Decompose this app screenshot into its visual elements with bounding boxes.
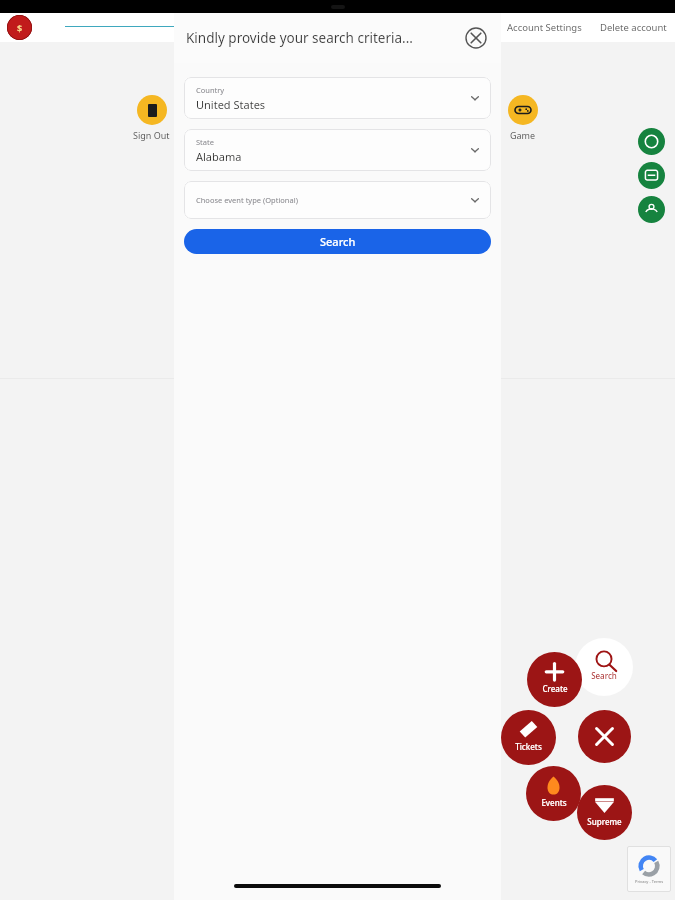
staticText: State: [196, 137, 214, 147]
button[interactable]: Events: [526, 766, 581, 821]
button[interactable]: Search: [575, 638, 633, 696]
staticText: Create: [542, 683, 568, 694]
staticText: Choose event type (Optional): [196, 195, 298, 205]
staticText: Alabama: [196, 149, 242, 164]
button[interactable]: Delete account: [600, 21, 667, 34]
button[interactable]: Home logo: [7, 15, 32, 40]
button[interactable]: Country: [184, 77, 491, 119]
button[interactable]: reCAPTCHA: [627, 846, 671, 892]
staticText: Sign Out: [133, 129, 170, 141]
button[interactable]: Tickets: [501, 710, 556, 765]
button[interactable]: Messages: [638, 162, 665, 189]
staticText: Country: [196, 85, 225, 95]
button[interactable]: Choose event type (Optional): [184, 181, 491, 219]
staticText: Game: [510, 129, 536, 141]
button[interactable]: State: [184, 129, 491, 171]
button[interactable]: Close: [463, 25, 489, 51]
button[interactable]: Create: [527, 652, 582, 707]
staticText: Search: [591, 670, 617, 681]
button[interactable]: Supreme: [577, 785, 632, 840]
button[interactable]: Account Settings: [507, 21, 582, 34]
button[interactable]: Sign Out: [133, 95, 170, 141]
button[interactable]: Contact: [638, 196, 665, 223]
staticText: $: [17, 22, 23, 34]
staticText: Kindly provide your search criteria...: [186, 29, 463, 47]
button[interactable]: Close menu: [578, 710, 631, 763]
staticText: Privacy - Terms: [635, 879, 664, 884]
staticText: Supreme: [587, 816, 622, 827]
button[interactable]: Game: [508, 95, 538, 141]
staticText: Events: [541, 797, 567, 808]
button[interactable]: Chat: [638, 128, 665, 155]
staticText: Search: [320, 234, 356, 249]
staticText: Tickets: [515, 741, 542, 752]
staticText: United States: [196, 97, 266, 112]
button[interactable]: Search: [184, 229, 491, 254]
